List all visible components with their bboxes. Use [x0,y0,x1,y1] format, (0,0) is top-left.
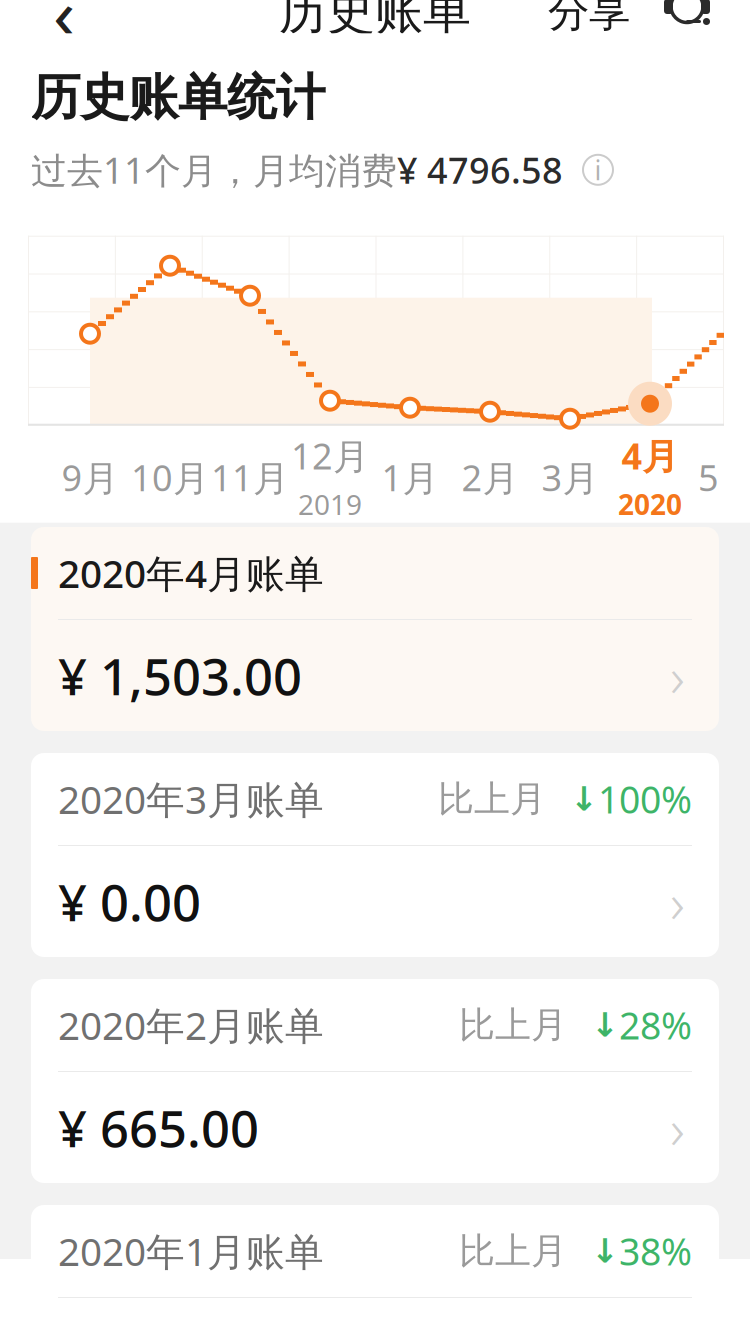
staticText: 2020年3月账单 [58,773,324,825]
staticText: 分享 [548,0,630,37]
staticText: 11月 [211,453,289,501]
staticText: 38% [619,1226,692,1276]
staticText: 过去11个月，月均消费 [31,146,397,194]
button[interactable]: 分享 [538,0,640,47]
staticText: 2020年1月账单 [58,1225,324,1277]
staticText: 2020年2月账单 [58,999,324,1051]
button[interactable]: 2020年3月账单 [31,753,719,957]
staticText: ¥ 4796.58 [397,146,563,194]
staticText: 9月 [61,453,118,501]
staticText: 28% [619,1000,692,1050]
staticText: 历史账单统计 [31,67,325,128]
staticText: › [670,638,685,713]
staticText: 3月 [541,453,598,501]
staticText: ¥ 665.00 [58,1094,259,1161]
staticText: ↓ [567,1006,619,1044]
staticText: ‹ [53,0,75,60]
staticText: 10月 [131,453,209,501]
staticText: i [594,152,601,187]
button[interactable]: 2020年4月账单 [31,527,719,731]
button[interactable]: 返回 [28,0,100,47]
staticText: 4月 [621,432,678,479]
staticText: ↓ [546,780,598,818]
staticText: ↓ [567,1232,619,1270]
button[interactable]: 客服 [652,0,722,47]
staticText: 2020年4月账单 [58,547,324,599]
staticText: 2020 [618,485,682,523]
staticText: 1月 [381,453,438,501]
staticText: 2月 [461,453,518,501]
staticText: 2019 [298,485,362,523]
staticText: 比上月 [459,1003,567,1047]
staticText: 历史账单 [279,0,471,41]
button[interactable]: 2020年2月账单 [31,979,719,1183]
staticText: ¥ 1,503.00 [58,642,302,709]
staticText: 比上月 [459,1229,567,1273]
button[interactable]: 2020年1月账单 [31,1205,719,1334]
staticText: ¥ 0.00 [58,868,201,935]
staticText: › [670,1090,685,1165]
staticText: › [670,864,685,939]
staticText: 100% [598,774,692,824]
button[interactable]: 说明 [563,147,613,193]
staticText: 12月 [291,432,369,479]
staticText: 比上月 [438,777,546,821]
staticText: 5 [698,453,719,501]
